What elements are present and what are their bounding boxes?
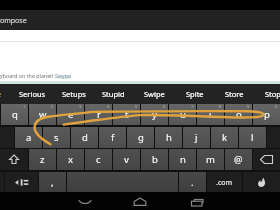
button[interactable]: a <box>15 127 42 148</box>
staticText: Stop <box>265 89 280 99</box>
button[interactable] <box>67 172 178 193</box>
button[interactable]: z <box>29 149 56 170</box>
staticText: 8 <box>219 104 222 109</box>
staticText: u <box>180 108 186 121</box>
button[interactable]: Spite <box>186 84 226 104</box>
staticText: b <box>152 153 158 166</box>
button[interactable]: f <box>99 127 126 148</box>
staticText: o <box>236 108 242 121</box>
button[interactable]: Menu <box>0 172 4 193</box>
staticText: g <box>138 131 144 144</box>
staticText: Stupid <box>102 89 125 99</box>
staticText: d <box>82 131 88 144</box>
staticText: m <box>206 153 215 166</box>
staticText: s <box>54 131 59 144</box>
button[interactable]: , <box>39 172 66 193</box>
staticText: q <box>12 108 18 121</box>
button[interactable]: Store <box>225 84 265 104</box>
staticText: 9 <box>247 104 250 109</box>
staticText: h <box>166 131 172 144</box>
button[interactable]: Shift <box>0 149 28 170</box>
button[interactable]: e <box>0 84 37 104</box>
staticText: v <box>124 153 129 166</box>
button[interactable]: p <box>253 104 280 125</box>
staticText: p <box>264 108 270 121</box>
button[interactable]: @ <box>225 149 252 170</box>
button[interactable]: s <box>43 127 70 148</box>
staticText: 7 <box>191 104 194 109</box>
staticText: ompose <box>0 16 27 26</box>
button[interactable]: c <box>85 149 112 170</box>
staticText: 1 <box>23 104 26 109</box>
staticText: Setups <box>62 89 86 99</box>
staticText: f <box>111 131 115 144</box>
button[interactable]: j <box>183 127 210 148</box>
button[interactable]: v <box>113 149 140 170</box>
staticText: l <box>251 131 254 144</box>
button[interactable]: Backspace <box>253 149 280 170</box>
button[interactable]: r <box>85 104 112 125</box>
button[interactable]: e <box>57 104 84 125</box>
button[interactable]: Stop <box>265 84 280 104</box>
staticText: t <box>125 108 129 121</box>
button[interactable]: Serious <box>19 84 59 104</box>
button[interactable]: g <box>127 127 154 148</box>
button[interactable]: m <box>197 149 224 170</box>
staticText: y <box>152 108 157 121</box>
staticText: Store <box>225 89 244 99</box>
staticText: e <box>68 108 74 121</box>
button[interactable]: x <box>57 149 84 170</box>
button[interactable]: Setups <box>62 84 102 104</box>
staticText: i <box>209 108 212 121</box>
staticText: 2 <box>51 104 54 109</box>
button[interactable]: Stupid <box>102 84 142 104</box>
staticText: 5 <box>135 104 138 109</box>
button[interactable]: u <box>169 104 196 125</box>
staticText: yboard on the planet! <box>0 72 55 79</box>
button[interactable]: Symbols <box>5 172 38 193</box>
button[interactable]: Swipe <box>144 84 184 104</box>
staticText: n <box>180 153 186 166</box>
button[interactable]: w <box>29 104 56 125</box>
staticText: a <box>26 131 32 144</box>
staticText: k <box>222 131 228 144</box>
staticText: 6 <box>163 104 166 109</box>
button[interactable]: i <box>197 104 224 125</box>
button[interactable]: Recents <box>177 192 217 210</box>
staticText: z <box>40 153 45 166</box>
button[interactable]: n <box>169 149 196 170</box>
button[interactable]: q <box>1 104 28 125</box>
button[interactable]: t <box>113 104 140 125</box>
staticText: w <box>39 108 47 121</box>
staticText: 0 <box>275 104 278 109</box>
staticText: 4 <box>107 104 110 109</box>
staticText: Spite <box>186 89 204 99</box>
staticText: , <box>51 176 54 189</box>
staticText: x <box>68 153 74 166</box>
button[interactable]: y <box>141 104 168 125</box>
staticText: c <box>96 153 101 166</box>
staticText: Serious <box>19 89 46 99</box>
staticText: r <box>97 108 101 121</box>
button[interactable]: o <box>225 104 252 125</box>
button[interactable]: b <box>141 149 168 170</box>
button[interactable]: Back <box>65 192 105 210</box>
button[interactable]: l <box>239 127 266 148</box>
button[interactable]: Home <box>120 192 160 210</box>
button[interactable]: .com <box>207 172 242 193</box>
button[interactable]: h <box>155 127 182 148</box>
button[interactable]: . <box>179 172 206 193</box>
staticText: e <box>0 89 2 99</box>
button[interactable]: Swype menu <box>243 172 280 193</box>
staticText: . <box>191 176 194 189</box>
staticText: 3 <box>79 104 82 109</box>
button[interactable]: Swype <box>55 72 72 79</box>
staticText: @ <box>234 153 243 166</box>
staticText: j <box>195 131 198 144</box>
staticText: Swipe <box>144 89 165 99</box>
staticText: .com <box>216 178 233 188</box>
button[interactable]: k <box>211 127 238 148</box>
button[interactable]: d <box>71 127 98 148</box>
